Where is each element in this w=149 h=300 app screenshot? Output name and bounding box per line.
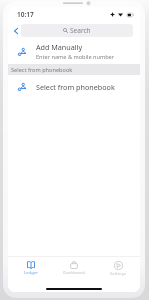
staticText: Settings [110,271,126,277]
staticText: Select from phonebook [36,82,115,92]
staticText: Search [70,26,91,35]
staticText: Select from phonebook [11,66,73,74]
button[interactable]: Settings [97,257,139,280]
button[interactable]: Ledger [10,257,52,280]
staticText: Add Manually [36,42,83,52]
button[interactable]: Dashboard [53,257,95,280]
button[interactable]: Select from phonebook [8,75,140,98]
staticText: Enter name & mobile number [36,53,115,61]
button[interactable]: Search [21,24,133,37]
button[interactable]: Back [9,23,22,38]
button[interactable]: Add Manually [8,39,140,64]
staticText: Dashboard [63,270,85,276]
staticText: Ledger [24,270,38,276]
staticText: 10:17 [17,10,34,19]
